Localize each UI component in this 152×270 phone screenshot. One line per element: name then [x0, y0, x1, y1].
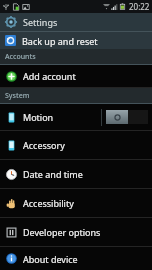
staticText: System: [5, 91, 30, 101]
staticText: Developer options: [23, 226, 148, 238]
staticText: Accessibility: [23, 197, 148, 209]
button[interactable]: Motion: [0, 104, 152, 130]
button[interactable]: Developer options: [0, 218, 152, 246]
staticText: Back up and reset: [22, 35, 98, 47]
button[interactable]: About device: [0, 247, 152, 270]
staticText: Accounts: [5, 52, 36, 62]
button[interactable]: Add account: [0, 65, 152, 87]
staticText: Motion: [23, 111, 101, 123]
button[interactable]: Settings: [0, 13, 152, 31]
staticText: Add account: [23, 70, 148, 82]
button[interactable]: Back up and reset: [0, 32, 152, 49]
button[interactable]: Motion on off toggle: [106, 110, 148, 124]
button[interactable]: Accessibility: [0, 189, 152, 217]
staticText: 20:22: [129, 1, 150, 12]
staticText: Date and time: [23, 168, 148, 180]
button[interactable]: Date and time: [0, 160, 152, 188]
staticText: Settings: [23, 16, 58, 28]
button[interactable]: Accessory: [0, 131, 152, 159]
staticText: About device: [23, 253, 148, 265]
staticText: Accessory: [23, 139, 148, 151]
